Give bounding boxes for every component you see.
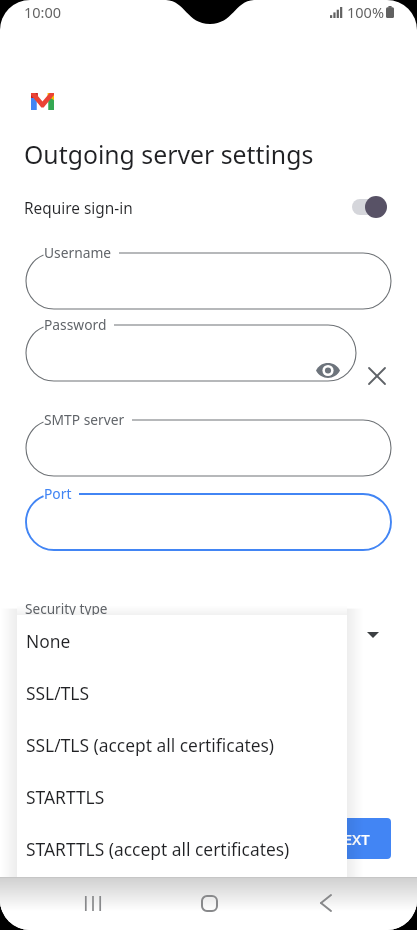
staticText: NEXT (332, 829, 370, 849)
staticText: Outgoing server settings (24, 137, 314, 171)
staticText: Security type (25, 599, 108, 618)
staticText: None (26, 629, 71, 653)
staticText: Require sign-in (24, 198, 133, 219)
staticText: SSL/TLS (26, 681, 90, 705)
button[interactable]: Clear password (363, 362, 391, 390)
button[interactable]: SSL/TLS (17, 667, 347, 719)
button[interactable] (349, 192, 393, 222)
button[interactable]: STARTTLS (accept all certificates) (17, 823, 347, 875)
staticText: SSL/TLS (accept all certificates) (26, 733, 275, 757)
button[interactable] (26, 409, 391, 476)
button[interactable]: Back (300, 880, 352, 926)
button[interactable]: None (17, 615, 347, 667)
button[interactable] (26, 242, 391, 309)
button[interactable]: NEXT (316, 818, 391, 859)
staticText: 10:00 (24, 2, 62, 22)
button[interactable]: Home (183, 880, 235, 926)
staticText: 100% (347, 2, 384, 22)
staticText: STARTTLS (accept all certificates) (26, 837, 290, 861)
button[interactable] (26, 314, 356, 381)
button[interactable]: STARTTLS (17, 771, 347, 823)
staticText: STARTTLS (26, 785, 105, 809)
button[interactable] (26, 483, 391, 550)
button[interactable]: Show password (310, 355, 346, 385)
button[interactable]: SSL/TLS (accept all certificates) (17, 719, 347, 771)
button[interactable]: Recents (67, 880, 119, 926)
button[interactable]: Select security type (356, 619, 392, 649)
